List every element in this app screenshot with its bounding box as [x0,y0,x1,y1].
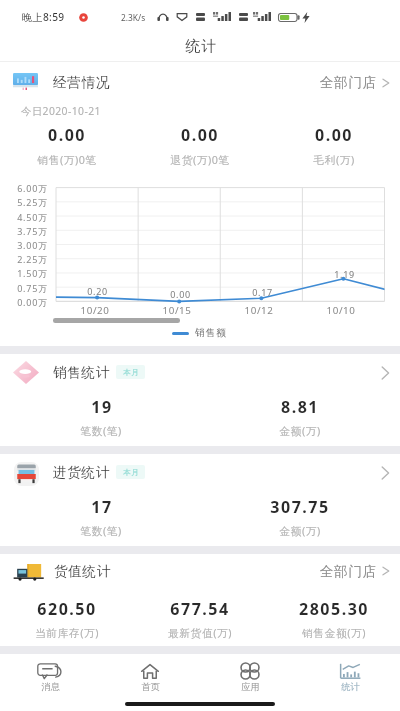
staticText: 6.00万 [17,182,48,194]
staticText: 10/20 [80,304,110,317]
staticText: 全部门店 [319,74,377,91]
staticText: 首页 [141,681,160,693]
staticText: 2805.30 [299,598,369,620]
button[interactable] [0,62,400,346]
staticText: 货值统计 [54,563,112,580]
other: Home [137,663,163,679]
button[interactable] [300,654,400,698]
staticText: 0.00 [315,124,353,146]
staticText: 经营情况 [53,74,111,91]
staticText: 最新货值(万) [168,625,232,640]
button[interactable] [200,654,300,698]
staticText: 0.20 [87,285,108,297]
staticText: 销售统计 [53,364,111,381]
staticText: 19 [91,396,113,418]
staticText: 2.3K/s [121,12,146,23]
staticText: 10/10 [326,304,356,317]
staticText: 677.54 [170,598,230,620]
staticText: 0.75万 [17,282,48,294]
staticText: 退货(万)0笔 [170,152,230,167]
staticText: 今日2020-10-21 [21,104,101,118]
staticText: 晚上8:59 [22,10,65,24]
staticText: 1.50万 [17,267,48,279]
button[interactable] [0,454,400,546]
staticText: 消息 [41,681,60,693]
staticText: 10/15 [162,304,192,317]
staticText: 销售额 [195,327,227,339]
staticText: 金额(万) [279,423,321,438]
button[interactable] [310,69,395,97]
staticText: 全部门店 [319,563,377,580]
staticText: 3.75万 [17,225,48,237]
staticText: 销售金额(万) [302,625,366,640]
staticText: 0.00 [181,124,219,146]
staticText: 笔数(笔) [80,523,122,538]
button[interactable] [0,654,100,698]
button[interactable] [310,558,395,586]
button[interactable] [0,354,400,446]
button[interactable] [100,654,200,698]
staticText: 统计 [341,681,360,693]
other: Apps [237,663,263,679]
staticText: 8.81 [281,396,319,418]
staticText: 本月 [123,368,139,377]
staticText: 2.25万 [17,253,48,265]
staticText: 0.00 [170,288,191,300]
staticText: 17 [91,496,113,518]
staticText: 4.50万 [17,211,48,223]
other: Messages [37,663,63,679]
staticText: 应用 [241,681,260,693]
staticText: 进货统计 [53,464,111,481]
staticText: 10/12 [244,304,274,317]
staticText: 0.00 [48,124,86,146]
staticText: 0.17 [252,286,273,298]
staticText: 3.00万 [17,239,48,251]
staticText: 5.25万 [17,196,48,208]
staticText: 本月 [123,468,139,477]
staticText: 307.75 [270,496,330,518]
button[interactable] [0,554,400,646]
staticText: 销售(万)0笔 [37,152,97,167]
staticText: 1.19 [334,268,355,280]
staticText: 统计 [185,37,218,56]
staticText: 当前库存(万) [35,625,99,640]
staticText: 620.50 [37,598,97,620]
staticText: 0.00万 [17,296,48,308]
staticText: 毛利(万) [313,152,355,167]
staticText: 金额(万) [279,523,321,538]
staticText: 笔数(笔) [80,423,122,438]
other: Statistics [337,663,363,679]
